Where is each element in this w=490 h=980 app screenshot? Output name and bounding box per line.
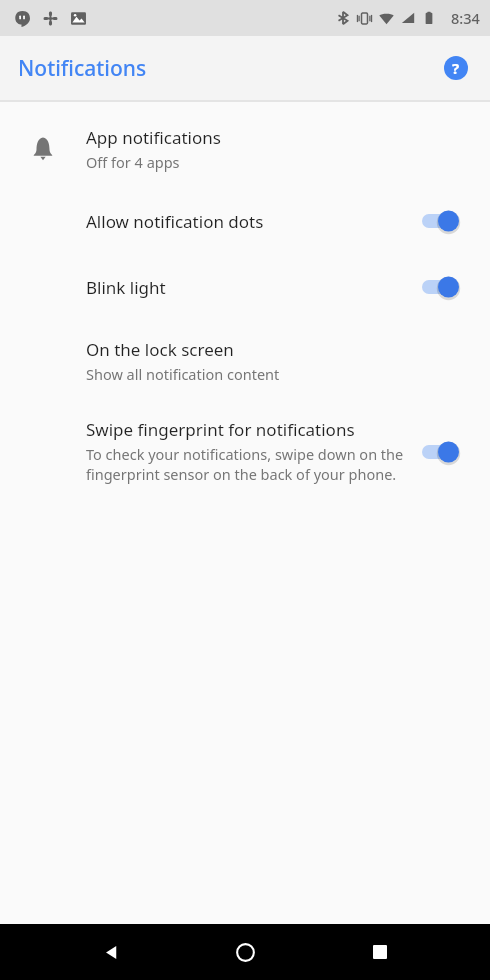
button[interactable]: Home	[221, 928, 269, 976]
staticText: To check your notifications, swipe down …	[86, 444, 412, 485]
button[interactable]: Toggle	[420, 435, 476, 469]
staticText: Notifications	[18, 54, 147, 83]
staticText: Allow notification dots	[86, 210, 264, 233]
button[interactable]: App notifications	[0, 116, 490, 182]
staticText: App notifications	[86, 126, 221, 149]
button[interactable]: On the lock screen	[0, 332, 490, 390]
staticText: Swipe fingerprint for notifications	[86, 418, 355, 441]
staticText: On the lock screen	[86, 338, 234, 361]
button[interactable]: Allow notification dots	[0, 198, 490, 244]
button[interactable]: Notifications	[18, 54, 147, 83]
staticText: Blink light	[86, 276, 166, 299]
button[interactable]: Blink light	[0, 264, 490, 310]
button[interactable]: Swipe fingerprint for notifications	[0, 414, 490, 489]
button[interactable]: Recent apps	[356, 928, 404, 976]
staticText: Off for 4 apps	[86, 152, 180, 172]
staticText: 8:34	[451, 8, 480, 28]
button[interactable]: Help	[436, 48, 476, 88]
button[interactable]: Toggle	[420, 204, 476, 238]
button[interactable]: Back	[87, 928, 135, 976]
button[interactable]: Toggle	[420, 270, 476, 304]
staticText: ?	[452, 58, 460, 78]
staticText: Show all notification content	[86, 364, 280, 384]
